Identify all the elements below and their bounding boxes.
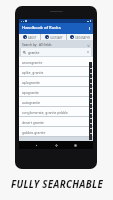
staticText: granite — [28, 50, 40, 55]
staticText: gabbro-granite — [22, 130, 46, 134]
button[interactable]: gabbro-granite — [19, 127, 93, 137]
staticText: desert granite — [22, 120, 44, 124]
button[interactable]: Home — [55, 144, 58, 147]
button[interactable]: anorogranite — [19, 57, 93, 67]
staticText: apogranite — [22, 90, 39, 94]
staticText: GLOSSARY — [50, 36, 63, 39]
staticText: aplogranite — [22, 80, 40, 84]
button[interactable]: conglomerate, granite pebble — [19, 107, 93, 117]
button[interactable]: aplogranite — [19, 77, 93, 87]
staticText: anorogranite — [22, 60, 43, 64]
staticText: FULLY SEARCHABLE — [11, 178, 103, 191]
staticText: aplite, granite — [22, 70, 44, 74]
button[interactable]: aplite, granite — [19, 67, 93, 77]
staticText: conglomerate, granite pebble — [22, 110, 68, 114]
button[interactable]: autogranite — [19, 97, 93, 107]
button[interactable]: Back — [35, 144, 38, 147]
button[interactable]: apogranite — [19, 87, 93, 97]
staticText: Handbook of Rocks — [22, 25, 61, 31]
button[interactable]: granite — [21, 48, 91, 56]
button[interactable]: ABOUT — [19, 34, 40, 40]
button[interactable]: desert granite — [19, 117, 93, 127]
button[interactable]: Alphabet index — [89, 62, 92, 140]
button[interactable]: Search by: All fields — [19, 42, 93, 48]
staticText: Search by: All fields — [22, 43, 52, 47]
button[interactable]: GLOSSARY — [41, 34, 66, 40]
staticText: autogranite — [22, 100, 41, 104]
staticText: ABOUT — [28, 36, 37, 39]
staticText: GEOGRAPHY — [75, 36, 91, 39]
button[interactable]: Recents — [74, 144, 77, 147]
button[interactable]: GEOGRAPHY — [67, 34, 93, 40]
